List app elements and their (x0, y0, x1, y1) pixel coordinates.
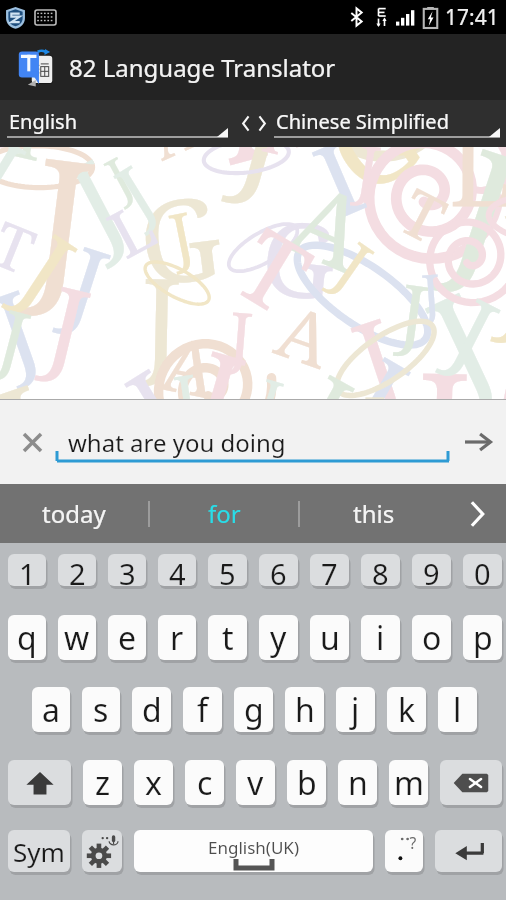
button[interactable]: English (0, 100, 234, 147)
staticText: w (64, 616, 90, 660)
button[interactable]: Next language (252, 100, 272, 147)
button[interactable]: j (336, 687, 375, 732)
staticText: k (398, 688, 416, 732)
button[interactable]: g (234, 687, 273, 732)
button[interactable]: 82 Language Translator (0, 34, 506, 100)
button[interactable]: s (82, 687, 120, 732)
button[interactable]: Chinese Simplified (272, 100, 506, 147)
button[interactable]: 4 (158, 554, 196, 586)
staticText: e (118, 616, 137, 660)
button[interactable]: Backspace (440, 760, 502, 805)
staticText: 5 (219, 554, 236, 586)
staticText: i (376, 616, 385, 660)
staticText: 9 (423, 554, 440, 586)
button[interactable]: r (158, 615, 196, 660)
staticText: a (42, 688, 60, 732)
button[interactable]: Period (385, 830, 423, 872)
button[interactable]: 0 (463, 554, 502, 586)
staticText: Sym (13, 834, 65, 869)
button[interactable]: f (183, 687, 222, 732)
staticText: 7 (321, 554, 338, 586)
staticText: what are you doing (68, 426, 286, 459)
button[interactable]: 7 (310, 554, 349, 586)
staticText: g (244, 688, 264, 732)
staticText: x (145, 761, 162, 805)
button[interactable]: Voice input settings (82, 830, 122, 872)
button[interactable]: Space (134, 830, 373, 872)
staticText: 82 Language Translator (69, 51, 336, 84)
button[interactable]: y (259, 615, 298, 660)
button[interactable]: Shift (8, 760, 71, 805)
staticText: for (208, 497, 241, 530)
staticText: p (473, 616, 493, 660)
staticText: l (453, 688, 462, 732)
staticText: t (222, 616, 234, 660)
button[interactable]: z (83, 760, 122, 805)
staticText: b (297, 761, 317, 805)
staticText: 6 (270, 554, 287, 586)
button[interactable]: Sym (8, 830, 70, 872)
button[interactable]: Previous language (236, 100, 256, 147)
staticText: o (422, 616, 442, 660)
button[interactable]: 5 (208, 554, 247, 586)
button[interactable]: i (361, 615, 400, 660)
staticText: n (348, 761, 368, 805)
button[interactable]: More suggestions (448, 484, 506, 543)
button[interactable]: v (236, 760, 275, 805)
staticText: English (9, 108, 78, 135)
button[interactable]: for (150, 484, 298, 543)
staticText: 2 (69, 554, 86, 586)
staticText: v (247, 761, 264, 805)
staticText: m (394, 761, 424, 805)
staticText: y (270, 616, 287, 660)
staticText: d (142, 688, 162, 732)
button[interactable]: n (338, 760, 377, 805)
staticText: 4 (169, 554, 186, 586)
button[interactable]: 3 (108, 554, 146, 586)
button[interactable]: l (438, 687, 477, 732)
button[interactable]: u (310, 615, 349, 660)
staticText: f (197, 688, 209, 732)
staticText: 0 (474, 554, 491, 586)
button[interactable]: 2 (58, 554, 96, 586)
button[interactable]: 9 (412, 554, 451, 586)
button[interactable]: q (8, 615, 46, 660)
button[interactable]: Translate (450, 411, 506, 473)
button[interactable]: 1 (8, 554, 46, 586)
staticText: 17:41 (445, 3, 499, 32)
staticText: Chinese Simplified (276, 108, 449, 135)
staticText: s (93, 688, 109, 732)
button[interactable]: e (108, 615, 146, 660)
staticText: 1 (19, 554, 36, 586)
button[interactable]: 6 (259, 554, 298, 586)
staticText: j (351, 688, 360, 732)
staticText: u (320, 616, 340, 660)
button[interactable]: c (185, 760, 224, 805)
button[interactable]: k (387, 687, 426, 732)
button[interactable]: x (134, 760, 173, 805)
staticText: c (197, 761, 213, 805)
button[interactable]: Clear text (6, 411, 58, 473)
staticText: r (170, 616, 184, 660)
button[interactable]: w (58, 615, 96, 660)
button[interactable]: today (0, 484, 148, 543)
button[interactable]: t (208, 615, 247, 660)
staticText: h (295, 688, 315, 732)
button[interactable]: h (285, 687, 324, 732)
button[interactable]: p (463, 615, 502, 660)
button[interactable]: this (300, 484, 448, 543)
button[interactable]: d (132, 687, 171, 732)
staticText: this (353, 497, 395, 530)
staticText: today (42, 497, 106, 530)
staticText: English(UK) (208, 836, 299, 859)
button[interactable]: 8 (361, 554, 400, 586)
button[interactable]: Enter (435, 830, 502, 872)
button[interactable]: a (32, 687, 70, 732)
button[interactable]: o (412, 615, 451, 660)
button[interactable]: b (287, 760, 326, 805)
staticText: z (95, 761, 111, 805)
staticText: 3 (119, 554, 136, 586)
staticText: q (17, 616, 37, 660)
staticText: 8 (372, 554, 389, 586)
button[interactable]: m (389, 760, 428, 805)
